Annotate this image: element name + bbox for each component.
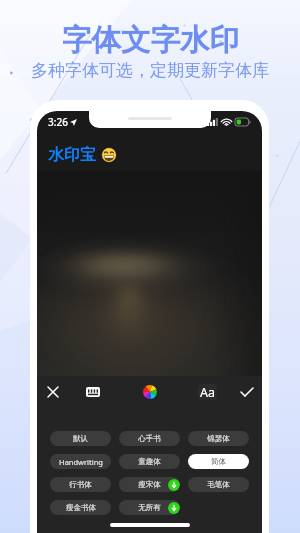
button[interactable]: Text colour xyxy=(140,382,160,402)
staticText: 瘦宋体 xyxy=(138,480,161,489)
button[interactable]: 简体 xyxy=(188,454,249,469)
staticText: 字体文字水印 xyxy=(62,22,239,59)
button[interactable]: 行书体 xyxy=(50,477,111,492)
staticText: 心手书 xyxy=(138,434,161,443)
staticText: 童趣体 xyxy=(138,457,161,466)
staticText: 水印宝 xyxy=(48,145,96,165)
button[interactable]: Done xyxy=(237,382,257,402)
button[interactable]: 无所有 xyxy=(119,500,180,515)
staticText: 毛笔体 xyxy=(207,480,230,489)
button[interactable]: 心手书 xyxy=(119,431,180,446)
button[interactable]: Aa xyxy=(197,382,217,402)
button[interactable]: Close xyxy=(43,382,63,402)
button[interactable]: Keyboard xyxy=(83,382,103,402)
button[interactable]: 毛笔体 xyxy=(188,477,249,492)
staticText: 瘦金书体 xyxy=(66,503,96,512)
staticText: Aa xyxy=(200,384,216,400)
staticText: 默认 xyxy=(73,434,88,443)
staticText: Handwriting xyxy=(59,457,103,467)
button[interactable]: 瘦金书体 xyxy=(50,500,111,515)
button[interactable]: 锦瑟体 xyxy=(188,431,249,446)
button[interactable]: 瘦宋体 xyxy=(119,477,180,492)
staticText: 多种字体可选，定期更新字体库 xyxy=(31,60,269,81)
staticText: 锦瑟体 xyxy=(207,434,230,443)
button[interactable]: 童趣体 xyxy=(119,454,180,469)
button[interactable]: Handwriting xyxy=(50,454,111,469)
staticText: 行书体 xyxy=(69,480,92,489)
staticText: 简体 xyxy=(211,457,226,466)
staticText: 无所有 xyxy=(138,503,161,512)
button[interactable]: 默认 xyxy=(50,431,111,446)
staticText: 3:26 xyxy=(48,115,68,129)
